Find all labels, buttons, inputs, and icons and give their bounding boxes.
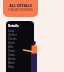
button[interactable]: Team: [6, 49, 34, 53]
staticText: Clients: [8, 37, 17, 41]
staticText: Help: [8, 65, 14, 69]
staticText: FOR ANY BUSINESS: [8, 8, 33, 12]
staticText: Orders: [8, 33, 17, 37]
staticText: Sales: [8, 29, 15, 33]
staticText: Notes: [8, 57, 16, 61]
button[interactable]: Bills: [6, 45, 34, 49]
button[interactable]: Orders: [6, 33, 34, 37]
staticText: Team: [8, 49, 15, 53]
button[interactable]: Tasks: [6, 53, 34, 57]
staticText: More: [8, 61, 15, 65]
staticText: ALL DETAILS: [9, 3, 32, 8]
button[interactable]: Sales: [6, 29, 34, 33]
button[interactable]: ALL DETAILS: [3, 0, 38, 17]
button[interactable]: Clients: [6, 37, 34, 41]
button[interactable]: Help: [6, 65, 34, 69]
button[interactable]: Stock: [6, 41, 34, 45]
staticText: Bills: [8, 45, 14, 49]
staticText: Stock: [8, 41, 15, 45]
button[interactable]: Notes: [6, 57, 34, 61]
staticText: Details: [8, 24, 19, 28]
staticText: Tasks: [8, 53, 15, 57]
button[interactable]: More: [6, 61, 34, 65]
